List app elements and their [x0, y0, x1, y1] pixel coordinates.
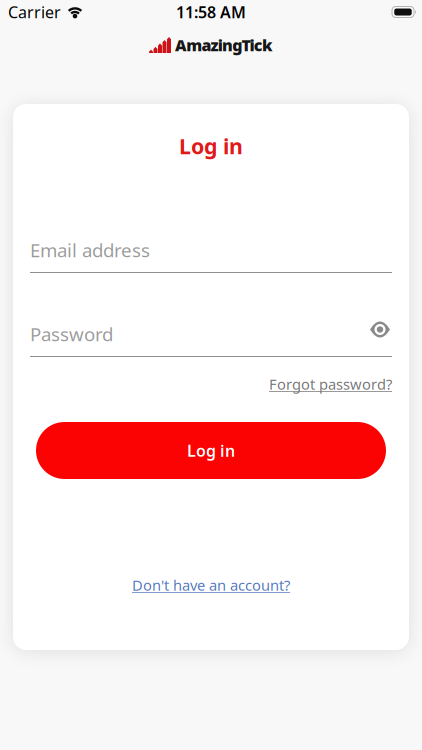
staticText: AmazingTick [175, 34, 273, 56]
staticText: Don't have an account? [132, 575, 290, 595]
button[interactable]: Show password [370, 321, 392, 347]
staticText: Carrier [8, 1, 61, 23]
staticText: Password [30, 322, 113, 346]
staticText: 11:58 AM [176, 1, 246, 23]
staticText: Email address [30, 238, 150, 262]
staticText: Log in [187, 440, 235, 461]
button[interactable]: Don't have an account? [132, 575, 290, 595]
staticText: Forgot password? [269, 374, 392, 394]
staticText: Log in [179, 132, 243, 160]
button[interactable]: Log in [36, 422, 386, 479]
button[interactable]: Forgot password? [269, 374, 392, 394]
